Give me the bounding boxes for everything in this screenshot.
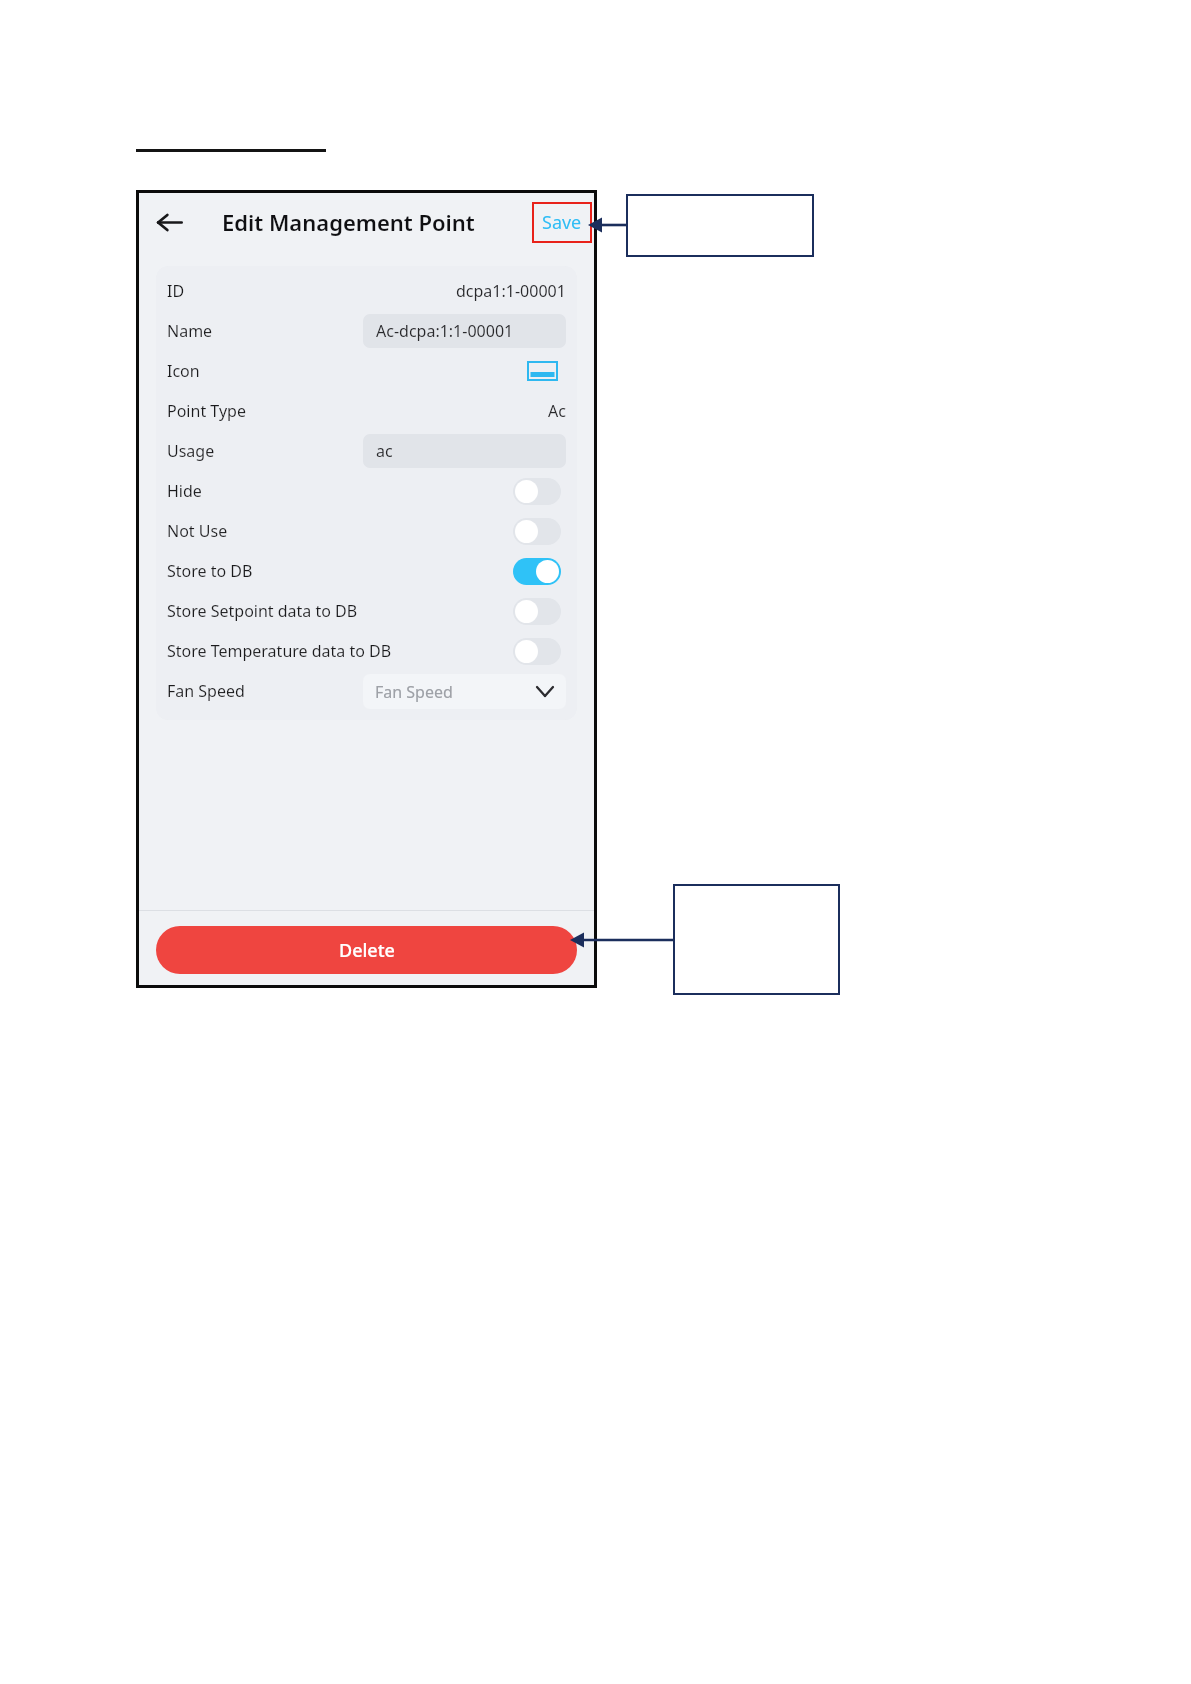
- staticText: Point Type: [167, 400, 246, 422]
- staticText: Ac: [548, 400, 566, 422]
- other: Air conditioner icon: [527, 361, 558, 381]
- staticText: Store Temperature data to DB: [167, 640, 392, 662]
- button[interactable]: Save: [532, 202, 592, 243]
- staticText: Fan Speed: [167, 680, 245, 702]
- staticText: Not Use: [167, 520, 228, 542]
- button[interactable]: Name: [156, 311, 577, 351]
- staticText: Name: [167, 320, 213, 342]
- button[interactable]: Hide: [513, 478, 561, 505]
- button[interactable]: Usage: [156, 431, 577, 471]
- staticText: Store Setpoint data to DB: [167, 600, 358, 622]
- staticText: ID: [167, 280, 185, 302]
- button[interactable]: ID: [156, 271, 577, 311]
- button[interactable]: Store Setpoint data to DB: [156, 591, 577, 631]
- button[interactable]: Store Setpoint data to DB: [513, 598, 561, 625]
- button[interactable]: Not Use: [156, 511, 577, 551]
- staticText: Store to DB: [167, 560, 253, 582]
- button[interactable]: Fan Speed: [156, 671, 577, 711]
- staticText: Fan Speed: [375, 681, 453, 703]
- staticText: Hide: [167, 480, 202, 502]
- staticText: Save: [542, 210, 582, 235]
- button[interactable]: Store Temperature data to DB: [156, 631, 577, 671]
- staticText: ac: [376, 440, 393, 462]
- button[interactable]: Fan Speed: [363, 674, 566, 709]
- button[interactable]: Delete: [156, 926, 577, 974]
- staticText: Icon: [167, 360, 200, 382]
- button[interactable]: Store to DB: [513, 558, 561, 585]
- staticText: Edit Management Point: [222, 207, 475, 237]
- staticText: Usage: [167, 440, 215, 462]
- button[interactable]: Store Temperature data to DB: [513, 638, 561, 665]
- staticText: Delete: [339, 938, 395, 963]
- staticText: Ac-dcpa:1:1-00001: [376, 320, 514, 342]
- button[interactable]: Store to DB: [156, 551, 577, 591]
- button[interactable]: Back: [148, 201, 190, 243]
- button[interactable]: Not Use: [513, 518, 561, 545]
- button[interactable]: Icon: [156, 351, 577, 391]
- staticText: dcpa1:1-00001: [456, 280, 566, 302]
- button[interactable]: Point Type: [156, 391, 577, 431]
- button[interactable]: Hide: [156, 471, 577, 511]
